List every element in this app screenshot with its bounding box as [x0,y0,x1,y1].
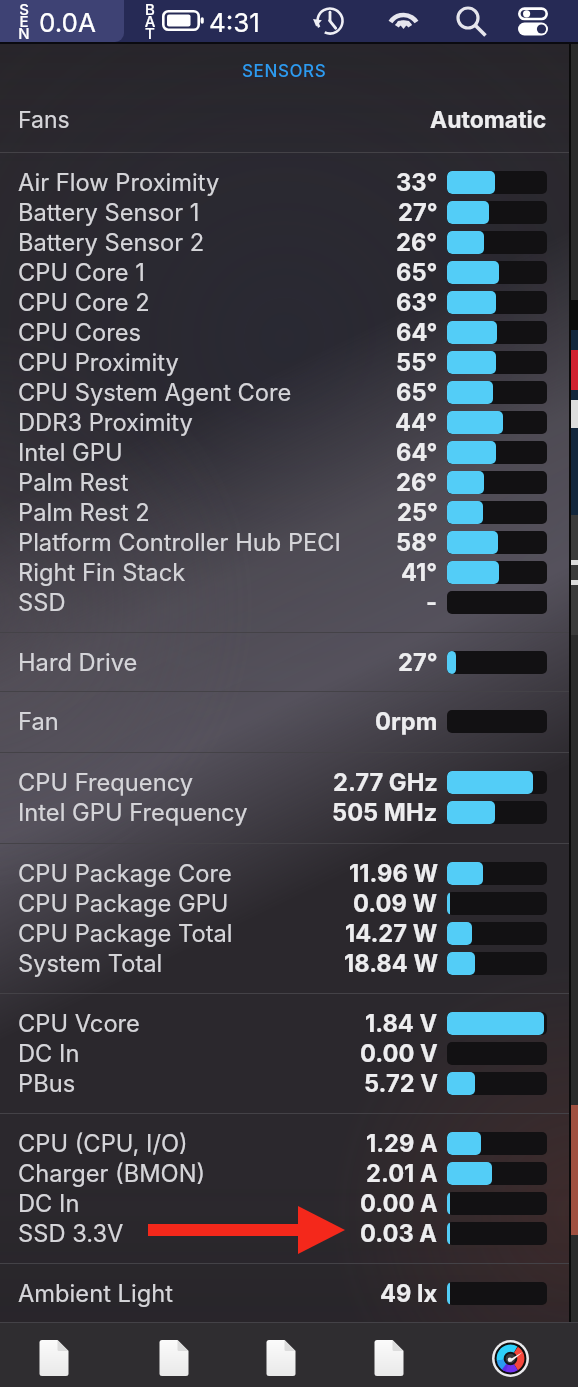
staticText: 44° [395,408,438,437]
staticText: System Total [18,949,163,978]
staticText: B [143,0,157,18]
button[interactable]: CPU Core 1 [0,257,569,287]
staticText: Palm Rest 2 [18,498,150,527]
button[interactable]: System Total [0,948,569,978]
staticText: CPU Package Core [18,859,232,888]
button[interactable]: Document [372,1338,406,1378]
button[interactable]: CPU Package GPU [0,888,569,918]
staticText: 0.00 V [360,1039,438,1068]
staticText: A [143,12,157,30]
staticText: Intel GPU [18,438,123,467]
staticText: Battery Sensor 2 [18,228,205,257]
button[interactable]: S [0,0,124,42]
staticText: Fan [18,707,59,736]
staticText: CPU Package Total [18,919,233,948]
button[interactable]: CPU Frequency [0,767,569,797]
staticText: 25° [397,498,438,527]
button[interactable]: CPU (CPU, I/O) [0,1128,569,1158]
staticText: SENSORS [242,61,327,82]
staticText: 65° [396,258,438,287]
staticText: N [17,24,31,42]
button[interactable]: Fans [0,98,569,142]
staticText: 0.09 W [353,889,438,918]
staticText: 0.03 A [360,1219,438,1248]
button[interactable]: SSD 3.3V [0,1218,569,1248]
button[interactable]: Control Center [518,6,552,38]
button[interactable]: Battery Sensor 2 [0,227,569,257]
staticText: - [426,588,438,617]
button[interactable]: Fan [0,706,569,736]
staticText: CPU Vcore [18,1009,140,1038]
button[interactable]: Palm Rest 2 [0,497,569,527]
button[interactable]: B [0,0,578,42]
staticText: 0.0A [39,7,96,38]
staticText: 41° [401,558,438,587]
button[interactable]: CPU Package Total [0,918,569,948]
staticText: 65° [396,378,438,407]
button[interactable]: Right Fin Stack [0,557,569,587]
button[interactable]: CPU System Agent Core [0,377,569,407]
button[interactable]: DC In [0,1038,569,1068]
staticText: CPU Package GPU [18,889,229,918]
button[interactable]: Platform Controller Hub PECI [0,527,569,557]
staticText: 0rpm [375,707,438,736]
button[interactable]: Air Flow Proximity [0,167,569,197]
button[interactable]: SENSORS [0,54,569,88]
staticText: 1.84 V [365,1009,438,1038]
staticText: Ambient Light [18,1279,173,1308]
button[interactable]: Ambient Light [0,1278,569,1308]
button[interactable]: Document [37,1338,71,1378]
staticText: 2.01 A [366,1159,438,1188]
button[interactable]: Time Machine [312,3,348,39]
staticText: Right Fin Stack [18,558,186,587]
button[interactable]: PBus [0,1068,569,1098]
staticText: 26° [396,468,438,497]
button[interactable]: DDR3 Proximity [0,407,569,437]
staticText: 64° [396,438,438,467]
staticText: PBus [18,1069,76,1098]
button[interactable]: CPU Cores [0,317,569,347]
staticText: 1.29 A [366,1129,438,1158]
staticText: 0.00 A [360,1189,438,1218]
staticText: Battery Sensor 1 [18,198,200,227]
staticText: 505 MHz [332,798,438,827]
button[interactable]: Charger (BMON) [0,1158,569,1188]
button[interactable]: CPU Package Core [0,858,569,888]
button[interactable]: Intel GPU Frequency [0,797,569,827]
button[interactable]: Sensors app [473,1337,547,1380]
staticText: 55° [396,348,438,377]
staticText: 2.77 GHz [333,768,438,797]
button[interactable]: Hard Drive [0,647,569,677]
button[interactable]: CPU Proximity [0,347,569,377]
staticText: 18.84 W [344,949,438,978]
button[interactable]: Document [264,1338,298,1378]
staticText: CPU Proximity [18,348,179,377]
staticText: E [17,12,31,30]
staticText: CPU System Agent Core [18,378,292,407]
staticText: 27° [398,198,438,227]
button[interactable]: Search [453,3,487,37]
button[interactable]: Battery Sensor 1 [0,197,569,227]
button[interactable]: DC In [0,1188,569,1218]
button[interactable]: Palm Rest [0,467,569,497]
staticText: Automatic [430,106,547,134]
staticText: T [143,24,157,42]
staticText: 63° [396,288,438,317]
button[interactable]: Document [157,1338,191,1378]
button[interactable]: SSD [0,587,569,617]
staticText: 11.96 W [349,859,438,888]
button[interactable]: CPU Core 2 [0,287,569,317]
button[interactable]: Wi-Fi [386,6,422,32]
staticText: 5.72 V [364,1069,438,1098]
staticText: Palm Rest [18,468,129,497]
button[interactable]: CPU Vcore [0,1008,569,1038]
staticText: SSD [18,588,66,617]
staticText: 27° [398,648,438,677]
staticText: CPU Core 1 [18,258,145,287]
staticText: Charger (BMON) [18,1159,206,1188]
button[interactable]: Intel GPU [0,437,569,467]
staticText: CPU Frequency [18,768,194,797]
staticText: DDR3 Proximity [18,408,193,437]
staticText: Platform Controller Hub PECI [18,528,341,557]
staticText: CPU (CPU, I/O) [18,1129,188,1158]
